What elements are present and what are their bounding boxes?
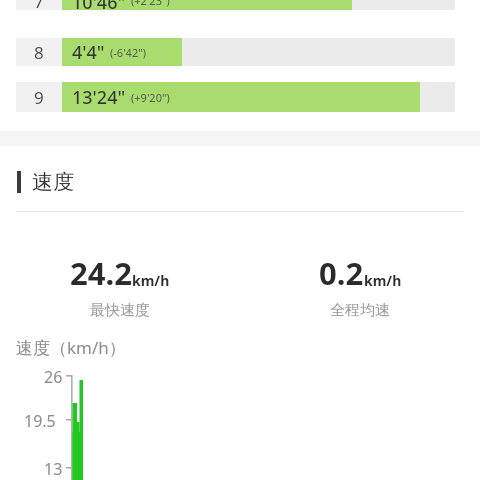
button[interactable]: 8 [0, 38, 480, 66]
staticText: 19.5 [24, 410, 56, 432]
staticText: 13 [44, 458, 63, 480]
staticText: (+2'23") [131, 0, 170, 8]
button[interactable]: 速度 [0, 165, 480, 199]
staticText: 9 [34, 86, 44, 109]
button[interactable]: 0.2 [240, 252, 480, 320]
staticText: 10'46" [72, 0, 126, 10]
button[interactable]: 24.2 [0, 252, 240, 320]
staticText: (+9'20") [131, 90, 170, 105]
staticText: 速度 [32, 169, 74, 195]
staticText: km/h [364, 271, 402, 290]
button[interactable]: 7 [0, 0, 480, 20]
staticText: (-6'42") [110, 45, 146, 60]
staticText: 8 [34, 41, 44, 64]
staticText: 速度（km/h） [16, 336, 126, 359]
staticText: 7 [34, 0, 44, 10]
staticText: km/h [132, 271, 170, 290]
staticText: 全程均速 [330, 301, 390, 320]
staticText: 13'24" [72, 85, 126, 110]
staticText: 0.2 [319, 252, 364, 294]
button[interactable]: 9 [0, 82, 480, 112]
staticText: 26 [44, 366, 63, 388]
staticText: 4'4" [72, 40, 105, 65]
staticText: 24.2 [70, 252, 132, 294]
staticText: 最快速度 [90, 301, 150, 320]
